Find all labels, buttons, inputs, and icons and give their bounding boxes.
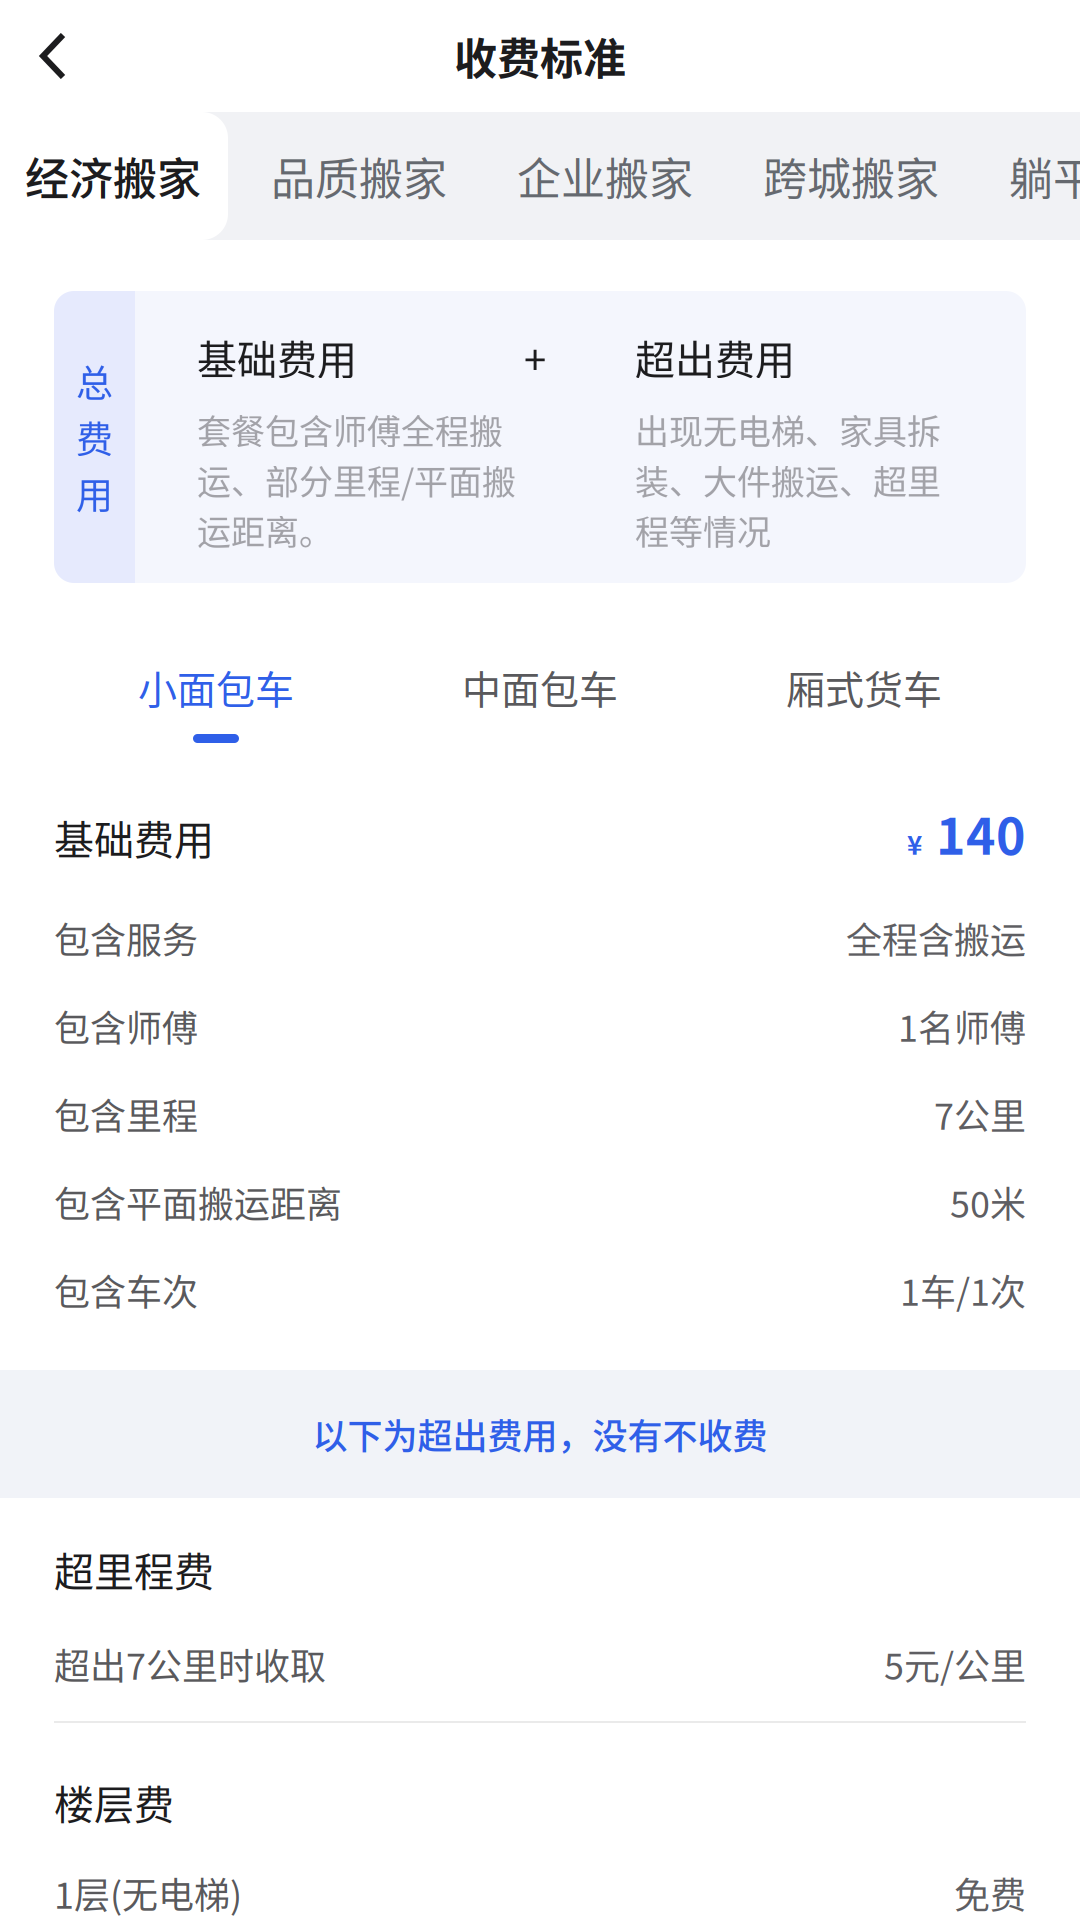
staticText: 企业搬家 — [517, 144, 693, 208]
button[interactable]: 小面包车 — [54, 658, 378, 754]
staticText: 中面包车 — [462, 659, 618, 715]
staticText: 免费 — [954, 1867, 1026, 1919]
staticText: 总 — [76, 354, 113, 408]
staticText: 费 — [76, 410, 113, 464]
staticText: 基础费用 — [54, 808, 214, 866]
staticText: 躺平搬家 — [1009, 144, 1080, 208]
button[interactable]: 返回 — [9, 12, 97, 100]
staticText: 包含师傅 — [54, 1000, 198, 1052]
staticText: 包含里程 — [54, 1088, 198, 1140]
button[interactable]: 品质搬家 — [236, 112, 482, 240]
staticText: 超出7公里时收取 — [54, 1638, 326, 1690]
staticText: 用 — [76, 466, 113, 520]
staticText: 小面包车 — [138, 659, 294, 715]
staticText: 1车/1次 — [900, 1264, 1026, 1316]
button[interactable]: 跨城搬家 — [728, 112, 974, 240]
staticText: 出现无电梯、家具拆装、大件搬运、超里程等情况 — [635, 405, 941, 555]
staticText: 5元/公里 — [884, 1638, 1026, 1690]
staticText: 超里程费 — [54, 1540, 214, 1598]
staticText: 1层(无电梯) — [54, 1867, 242, 1919]
staticText: 包含平面搬运距离 — [54, 1176, 342, 1228]
staticText: 包含车次 — [54, 1264, 198, 1316]
button[interactable]: 躺平搬家 — [974, 112, 1080, 240]
staticText: 楼层费 — [54, 1773, 174, 1831]
staticText: 基础费用 — [197, 328, 357, 386]
staticText: 套餐包含师傅全程搬运、部分里程/平面搬运距离。 — [197, 405, 516, 555]
button[interactable]: 厢式货车 — [702, 658, 1026, 754]
staticText: + — [524, 328, 546, 386]
staticText: 140 — [936, 797, 1026, 869]
staticText: 收费标准 — [454, 25, 626, 87]
staticText: 品质搬家 — [271, 144, 447, 208]
staticText: 全程含搬运 — [846, 912, 1026, 964]
staticText: ¥ — [907, 825, 922, 862]
staticText: 超出费用 — [635, 328, 795, 386]
button[interactable]: 经济搬家 — [0, 112, 236, 240]
staticText: 7公里 — [934, 1088, 1026, 1140]
staticText: 包含服务 — [54, 912, 198, 964]
staticText: 50米 — [950, 1176, 1026, 1228]
button[interactable]: 中面包车 — [378, 658, 702, 754]
staticText: 厢式货车 — [786, 659, 942, 715]
staticText: 跨城搬家 — [763, 144, 939, 208]
button[interactable]: 企业搬家 — [482, 112, 728, 240]
staticText: 以下为超出费用，没有不收费 — [312, 1409, 767, 1459]
staticText: 1名师傅 — [898, 1000, 1026, 1052]
staticText: 经济搬家 — [25, 144, 201, 208]
